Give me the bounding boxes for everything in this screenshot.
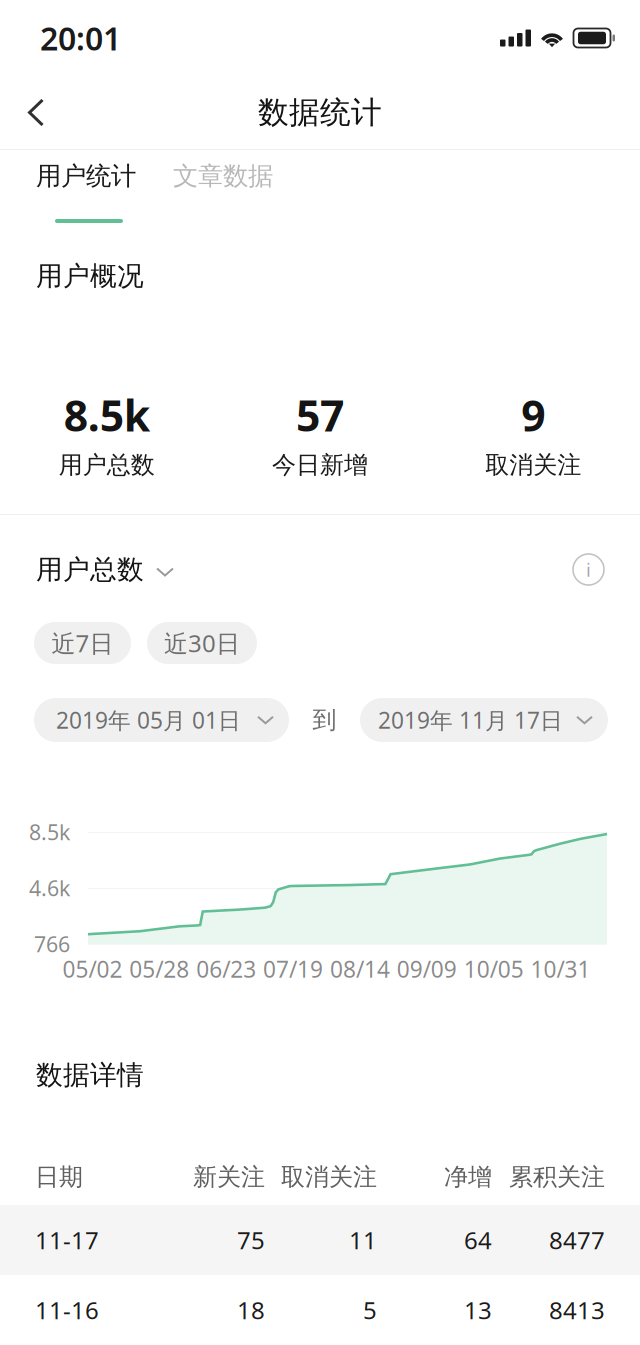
button[interactable]: 近30日 (147, 622, 257, 664)
staticText: 10/31 (531, 954, 591, 984)
staticText: 8.5k (64, 387, 150, 443)
staticText: 57 (296, 387, 344, 443)
staticText: 20:01 (40, 17, 121, 59)
staticText: 05/28 (129, 954, 189, 984)
staticText: 08/14 (330, 954, 390, 984)
button[interactable]: 文章数据 (173, 162, 273, 190)
staticText: 取消关注 (485, 450, 581, 480)
staticText: 用户总数 (36, 553, 144, 586)
button[interactable]: 2019年 05月 01日 (34, 698, 289, 742)
staticText: 64 (464, 1224, 492, 1256)
staticText: 4.6k (29, 874, 70, 902)
staticText: 数据统计 (258, 94, 382, 131)
staticText: 2019年 11月 17日 (378, 705, 563, 735)
button[interactable]: More info (573, 554, 604, 585)
staticText: 11-17 (35, 1224, 99, 1256)
staticText: i (586, 557, 591, 582)
button[interactable]: 用户统计 (36, 162, 136, 190)
staticText: 8413 (549, 1294, 605, 1326)
staticText: 用户概况 (36, 260, 144, 292)
staticText: 新关注 (193, 1162, 265, 1192)
staticText: 今日新增 (272, 450, 368, 480)
staticText: 用户总数 (59, 450, 155, 480)
staticText: 07/19 (263, 954, 323, 984)
staticText: 8.5k (29, 818, 70, 846)
staticText: 9 (521, 387, 545, 443)
staticText: 766 (34, 930, 70, 958)
staticText: 近30日 (164, 627, 240, 659)
staticText: 近7日 (51, 627, 113, 659)
staticText: 75 (237, 1224, 265, 1256)
staticText: 18 (237, 1294, 265, 1326)
staticText: 数据详情 (36, 1059, 144, 1091)
staticText: 10/05 (464, 954, 524, 984)
staticText: 日期 (35, 1162, 83, 1192)
staticText: 5 (363, 1294, 377, 1326)
staticText: 11-16 (35, 1294, 99, 1326)
button[interactable]: 2019年 11月 17日 (360, 698, 608, 742)
staticText: 11 (349, 1224, 377, 1256)
staticText: 8477 (549, 1224, 605, 1256)
button[interactable]: 近7日 (34, 622, 131, 664)
staticText: 05/02 (62, 954, 122, 984)
staticText: 用户统计 (36, 160, 136, 191)
button[interactable]: Back (0, 76, 68, 148)
staticText: 取消关注 (281, 1162, 377, 1192)
staticText: 净增 (444, 1162, 492, 1192)
staticText: 文章数据 (173, 160, 273, 191)
staticText: 13 (464, 1294, 492, 1326)
staticText: 09/09 (397, 954, 457, 984)
staticText: 到 (312, 705, 336, 735)
staticText: 2019年 05月 01日 (56, 705, 241, 735)
staticText: 06/23 (196, 954, 256, 984)
staticText: 累积关注 (509, 1162, 605, 1192)
